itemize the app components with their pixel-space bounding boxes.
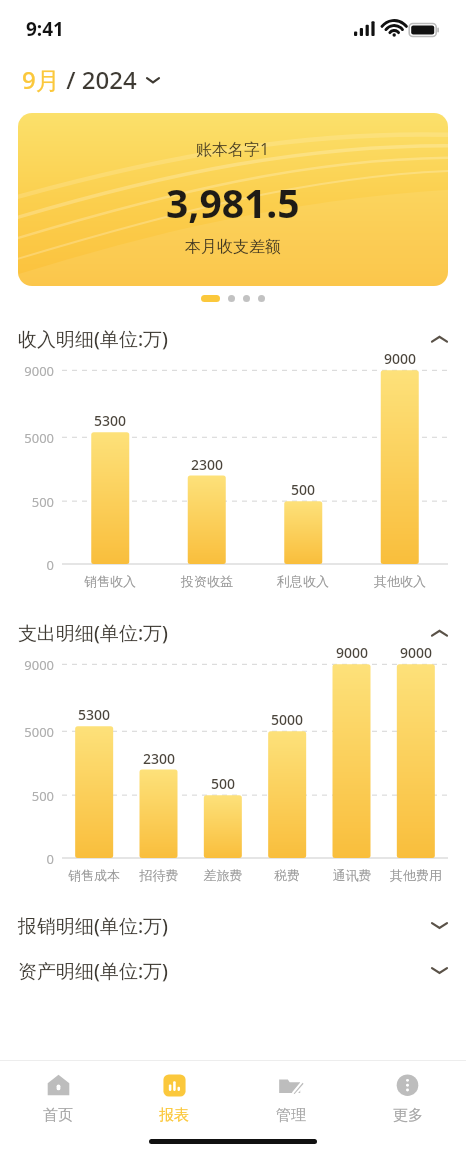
staticText: / 2024 <box>60 63 137 96</box>
other: 更多 <box>394 1072 421 1099</box>
button[interactable]: 首页 <box>0 1061 116 1139</box>
staticText: 资产明细(单位:万) <box>18 958 169 984</box>
button[interactable]: 账本名字1 <box>18 113 448 286</box>
button[interactable]: 9月 <box>20 59 162 100</box>
staticText: 9000 <box>8 362 54 380</box>
staticText: 本月收支差额 <box>185 237 281 257</box>
staticText: 账本名字1 <box>196 138 270 160</box>
staticText: 5300 <box>64 705 124 724</box>
staticText: 3,981.5 <box>166 176 300 229</box>
staticText: 9000 <box>370 349 430 368</box>
staticText: 9月 <box>22 63 60 96</box>
staticText: 500 <box>8 787 54 805</box>
staticText: 报表 <box>159 1106 189 1125</box>
staticText: 利息收入 <box>267 573 339 589</box>
button[interactable]: 报销明细(单位:万) <box>0 903 466 948</box>
staticText: 管理 <box>276 1106 306 1125</box>
button[interactable]: 收入明细(单位:万) <box>0 319 466 359</box>
staticText: 9000 <box>8 656 54 674</box>
staticText: 差旅费 <box>187 867 259 883</box>
staticText: 更多 <box>393 1106 423 1125</box>
staticText: 报销明细(单位:万) <box>18 913 169 939</box>
staticText: 招待费 <box>123 867 195 883</box>
staticText: 5000 <box>8 723 54 741</box>
staticText: 500 <box>8 493 54 511</box>
button[interactable]: 管理 <box>232 1061 349 1139</box>
staticText: 9000 <box>386 643 446 662</box>
staticText: 5300 <box>80 411 140 430</box>
staticText: 销售收入 <box>74 573 146 589</box>
button[interactable]: 报表 <box>116 1061 232 1139</box>
button[interactable]: 支出明细(单位:万) <box>0 613 466 653</box>
other: 管理 <box>277 1072 304 1099</box>
staticText: 0 <box>8 556 54 574</box>
staticText: 500 <box>273 480 333 499</box>
staticText: 2300 <box>129 749 189 768</box>
staticText: 投资收益 <box>171 573 243 589</box>
staticText: 9:41 <box>26 16 64 42</box>
staticText: 首页 <box>43 1106 73 1125</box>
button[interactable]: 更多 <box>349 1061 466 1139</box>
staticText: 其他收入 <box>364 573 436 589</box>
staticText: 通讯费 <box>316 867 388 883</box>
staticText: 税费 <box>251 867 323 883</box>
staticText: 其他费用 <box>380 867 452 883</box>
staticText: 销售成本 <box>58 867 130 883</box>
other: 报表 <box>161 1072 188 1099</box>
other: 首页 <box>45 1072 72 1099</box>
staticText: 0 <box>8 850 54 868</box>
staticText: 5000 <box>257 710 317 729</box>
staticText: 9000 <box>322 643 382 662</box>
staticText: 2300 <box>177 455 237 474</box>
staticText: 5000 <box>8 429 54 447</box>
staticText: 收入明细(单位:万) <box>18 326 169 352</box>
staticText: 500 <box>193 774 253 793</box>
staticText: 支出明细(单位:万) <box>18 620 169 646</box>
button[interactable]: 资产明细(单位:万) <box>0 948 466 993</box>
